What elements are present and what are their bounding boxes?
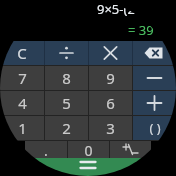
button[interactable]: Multiply — [89, 41, 132, 65]
staticText: 7 — [18, 68, 27, 88]
button[interactable]: 4 — [0, 91, 44, 115]
button[interactable]: Plus minus — [110, 141, 151, 158]
button[interactable]: 2 — [45, 116, 88, 140]
button[interactable]: . — [25, 141, 67, 158]
staticText: 1 — [18, 118, 27, 138]
staticText: = 39 — [128, 21, 154, 39]
button[interactable]: Equals — [0, 158, 176, 176]
staticText: 5 — [62, 93, 71, 113]
button[interactable]: 1 — [0, 116, 44, 140]
button[interactable]: Plus — [133, 91, 176, 115]
staticText: 3 — [106, 118, 115, 138]
staticText: ( ) — [149, 119, 161, 137]
staticText: 0 — [84, 141, 93, 158]
button[interactable]: 8 — [45, 66, 88, 90]
staticText: 6 — [106, 93, 115, 113]
staticText: 9×5-(2+4) — [97, 0, 154, 18]
staticText: 4 — [18, 93, 27, 113]
staticText: . — [44, 141, 48, 158]
button[interactable]: 0 — [68, 141, 109, 158]
staticText: 9 — [106, 68, 115, 88]
staticText: 2 — [62, 118, 71, 138]
button[interactable]: ( ) — [133, 116, 176, 140]
button[interactable]: 7 — [0, 66, 44, 90]
button[interactable]: Divide — [45, 41, 88, 65]
button[interactable]: 5 — [45, 91, 88, 115]
button[interactable]: 3 — [89, 116, 132, 140]
staticText: C — [17, 43, 27, 63]
button[interactable]: 6 — [89, 91, 132, 115]
button[interactable]: 9 — [89, 66, 132, 90]
button[interactable]: Backspace — [133, 41, 176, 65]
staticText: 8 — [62, 68, 71, 88]
button[interactable]: Minus — [133, 66, 176, 90]
button[interactable]: C — [0, 41, 44, 65]
